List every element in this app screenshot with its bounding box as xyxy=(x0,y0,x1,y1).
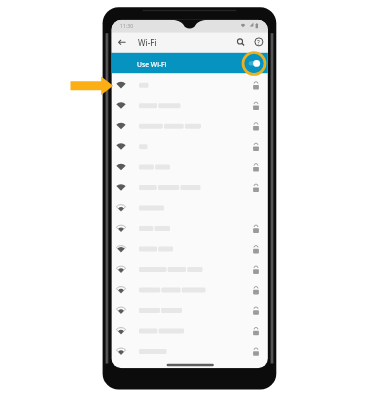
button[interactable] xyxy=(111,300,268,320)
button[interactable] xyxy=(111,198,268,218)
button[interactable]: Navigate back xyxy=(114,33,131,52)
button[interactable] xyxy=(111,341,268,361)
staticText: Wi-Fi xyxy=(138,37,157,48)
button[interactable]: Help xyxy=(250,33,267,52)
button[interactable] xyxy=(111,157,268,177)
button[interactable] xyxy=(111,259,268,279)
button[interactable] xyxy=(111,136,268,156)
staticText: ? xyxy=(257,38,260,46)
button[interactable] xyxy=(111,218,268,238)
button[interactable] xyxy=(111,177,268,197)
button[interactable] xyxy=(111,116,268,136)
button[interactable] xyxy=(111,239,268,259)
button[interactable] xyxy=(111,280,268,300)
button[interactable] xyxy=(111,95,268,115)
button[interactable] xyxy=(111,75,268,95)
button[interactable]: Use Wi-Fi toggle xyxy=(111,52,268,73)
button[interactable]: Search xyxy=(232,33,249,52)
staticText: 11:30 xyxy=(120,22,134,29)
staticText: Use Wi-Fi xyxy=(137,60,167,69)
button[interactable] xyxy=(111,321,268,341)
